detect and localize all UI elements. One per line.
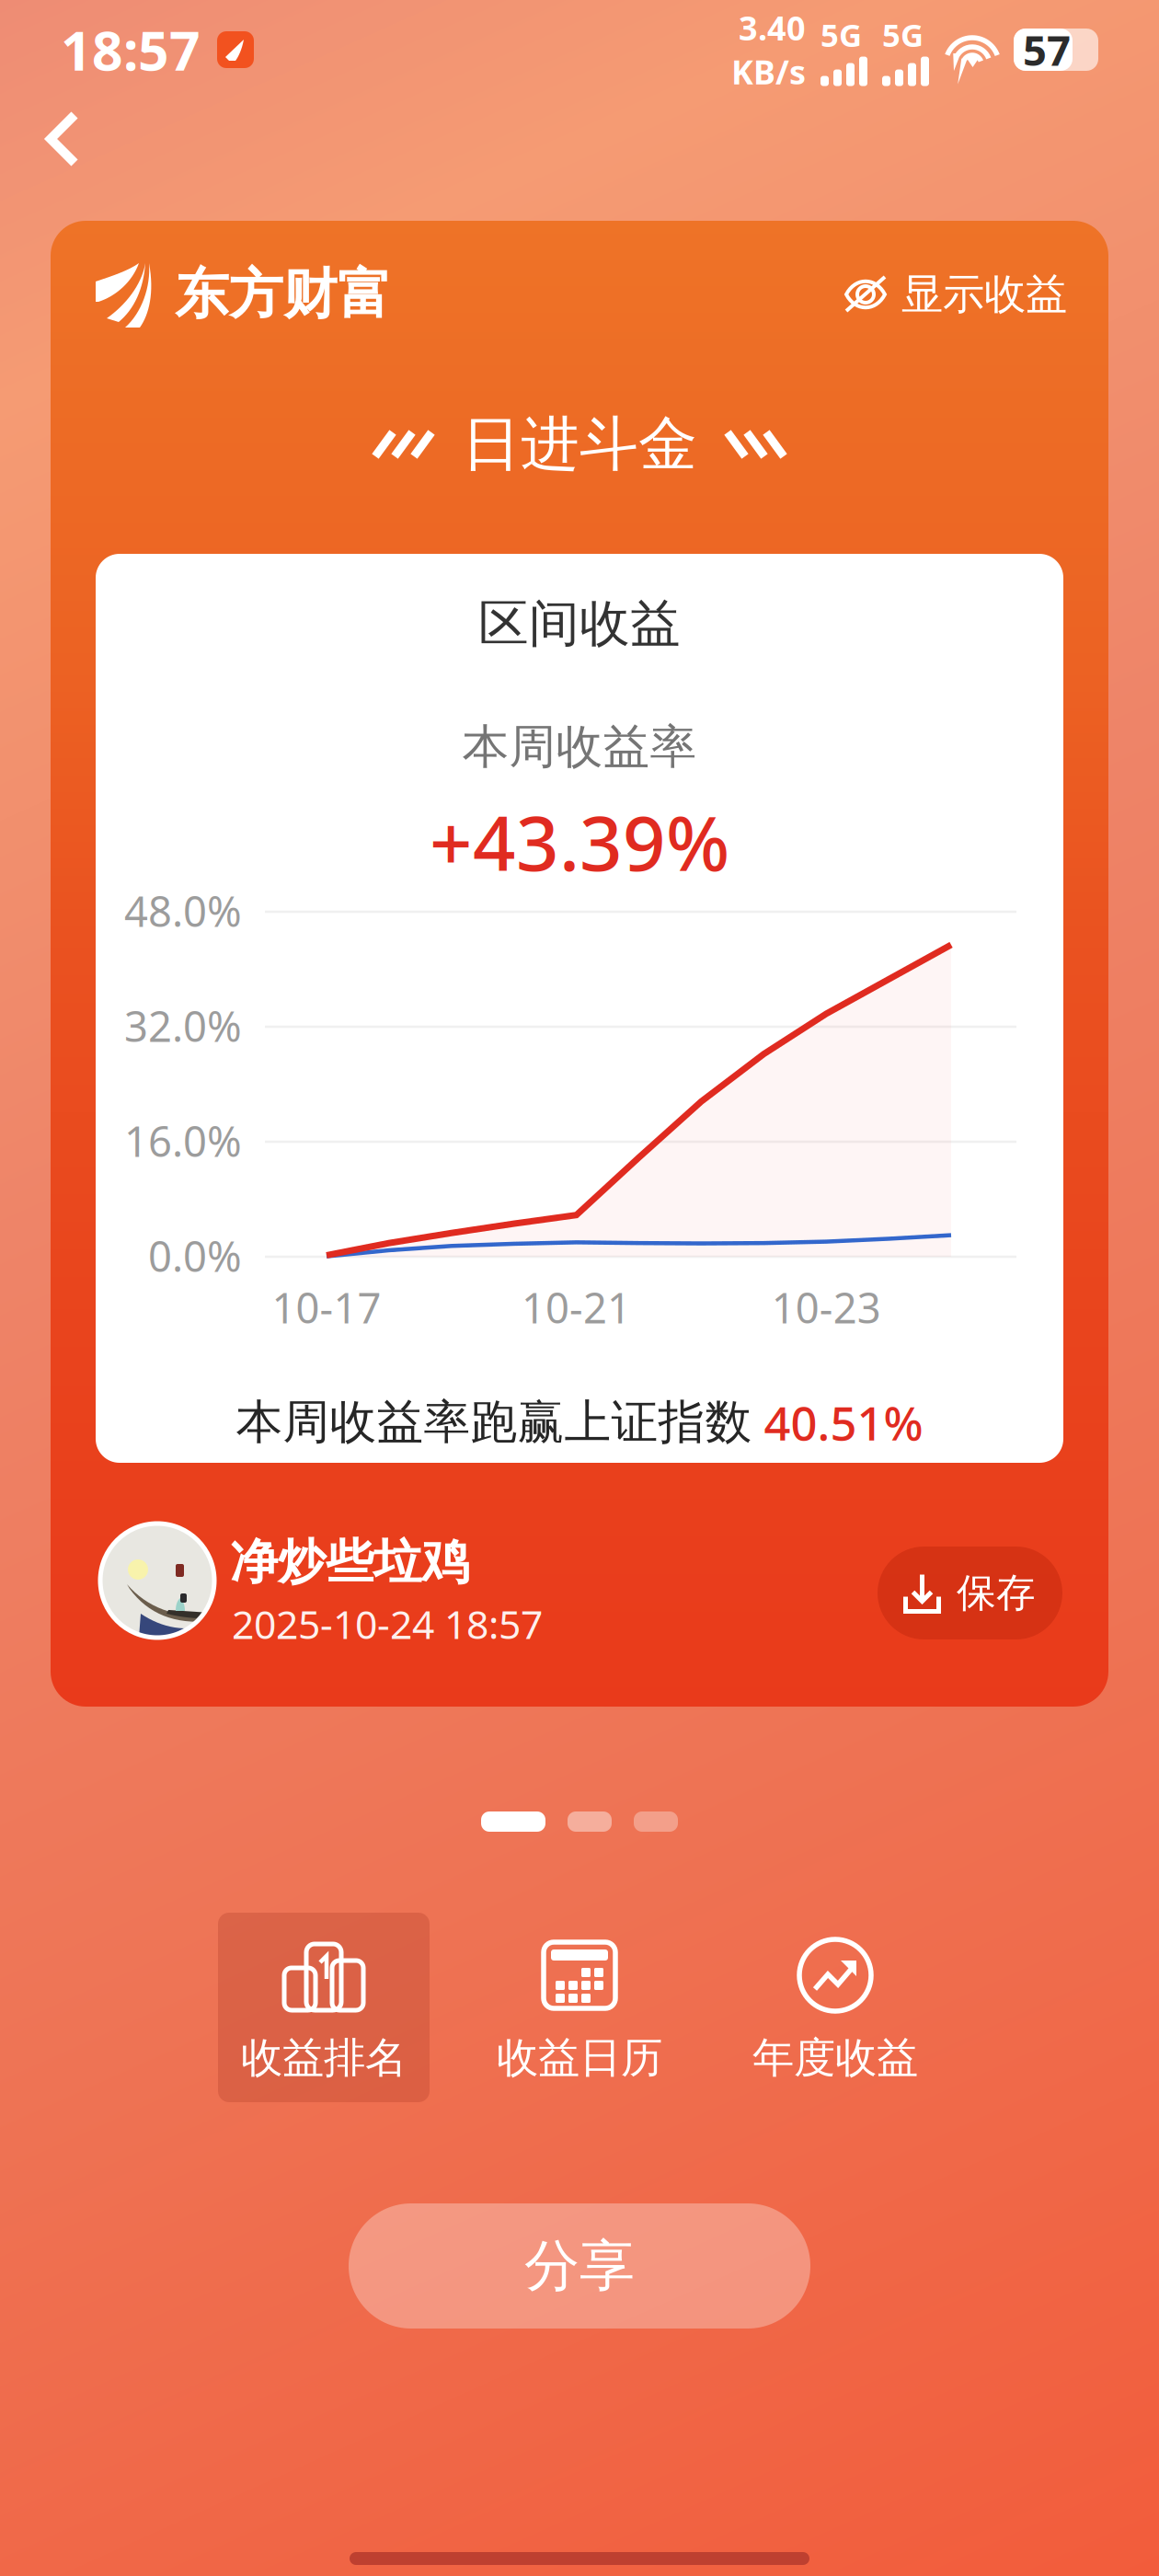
staticText: 5G: [820, 13, 862, 56]
staticText: 5G: [882, 13, 924, 56]
staticText: KB/s: [731, 50, 806, 94]
staticText: 18:57: [61, 14, 201, 85]
button[interactable]: 保存: [878, 1547, 1062, 1639]
staticText: 日进斗金: [462, 408, 697, 481]
button[interactable]: 收益排名: [196, 1913, 452, 2102]
staticText: 0.0%: [148, 1228, 242, 1283]
staticText: 48.0%: [124, 883, 242, 938]
staticText: 2025-10-24 18:57: [232, 1598, 543, 1650]
staticText: 16.0%: [124, 1113, 242, 1168]
staticText: 收益排名: [241, 2032, 407, 2084]
button[interactable]: Back: [17, 99, 109, 178]
staticText: 本周收益率: [462, 718, 697, 776]
button[interactable]: 显示收益: [750, 269, 1067, 320]
staticText: 本周收益率跑赢上证指数: [236, 1394, 752, 1451]
staticText: 净炒些垃鸡: [230, 1533, 469, 1592]
staticText: 32.0%: [124, 998, 242, 1053]
button[interactable]: 年度收益: [707, 1913, 963, 2102]
staticText: 40.51%: [752, 1391, 923, 1453]
button[interactable]: 分享: [349, 2203, 810, 2329]
staticText: 保存: [957, 1569, 1036, 1617]
button[interactable]: 收益日历: [452, 1913, 707, 2102]
staticText: 收益日历: [497, 2032, 662, 2084]
staticText: 分享: [524, 2232, 635, 2300]
staticText: 东方财富: [175, 261, 392, 328]
staticText: +43.39%: [430, 792, 729, 891]
staticText: 10-21: [522, 1280, 631, 1335]
staticText: 3.40: [739, 6, 806, 50]
staticText: 57: [1023, 22, 1071, 77]
staticText: 显示收益: [901, 269, 1067, 320]
staticText: 区间收益: [478, 593, 681, 655]
staticText: 10-17: [272, 1280, 381, 1335]
staticText: 年度收益: [752, 2032, 918, 2084]
staticText: 10-23: [771, 1280, 881, 1335]
